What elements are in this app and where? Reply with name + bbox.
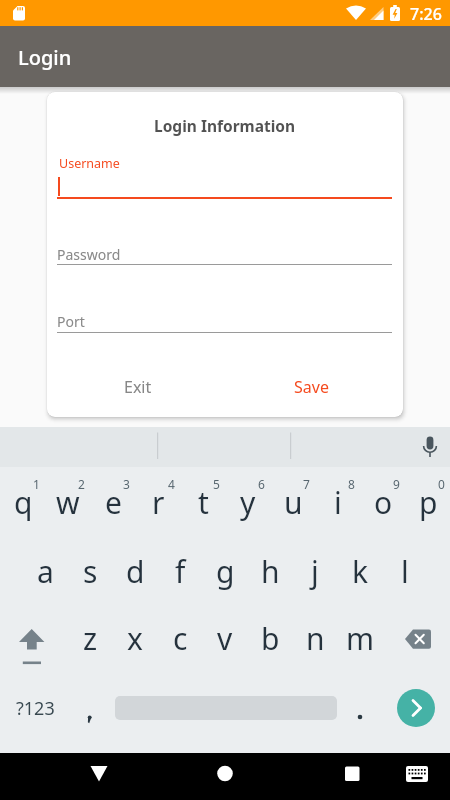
button[interactable]: g bbox=[203, 546, 247, 596]
staticText: 0 bbox=[438, 476, 445, 492]
staticText: v bbox=[217, 618, 233, 659]
button[interactable]: Exit bbox=[93, 362, 183, 412]
staticText: 5 bbox=[213, 476, 220, 492]
staticText: c bbox=[173, 618, 188, 659]
button[interactable]: w bbox=[46, 477, 90, 527]
staticText: 2 bbox=[78, 476, 85, 492]
button[interactable]: z bbox=[68, 613, 112, 663]
staticText: z bbox=[83, 618, 98, 659]
staticText: o bbox=[374, 482, 393, 523]
button[interactable]: u bbox=[271, 477, 315, 527]
button[interactable]: j bbox=[293, 546, 337, 596]
staticText: q bbox=[14, 482, 33, 523]
button[interactable]: a bbox=[23, 546, 67, 596]
button[interactable]: s bbox=[68, 546, 112, 596]
button[interactable]: p bbox=[406, 477, 450, 527]
button[interactable]: Save bbox=[266, 362, 356, 412]
staticText: Login Information bbox=[154, 115, 296, 136]
staticText: Save bbox=[294, 376, 329, 398]
button[interactable] bbox=[332, 753, 372, 800]
button[interactable]: o bbox=[361, 477, 405, 527]
button[interactable] bbox=[400, 753, 440, 800]
staticText: 3 bbox=[123, 476, 130, 492]
staticText: d bbox=[126, 551, 145, 592]
button[interactable]: h bbox=[248, 546, 292, 596]
staticText: Exit bbox=[124, 376, 152, 398]
staticText: r bbox=[152, 482, 165, 523]
staticText: s bbox=[83, 551, 98, 592]
staticText: 1 bbox=[33, 476, 40, 492]
button[interactable]: f bbox=[158, 546, 202, 596]
button[interactable]: t bbox=[181, 477, 225, 527]
staticText: j bbox=[311, 551, 319, 592]
staticText: p bbox=[419, 482, 438, 523]
staticText: 8 bbox=[348, 476, 355, 492]
button[interactable]: k bbox=[338, 546, 382, 596]
staticText: m bbox=[346, 618, 375, 659]
button[interactable]: y bbox=[226, 477, 270, 527]
staticText: 7:26 bbox=[410, 3, 442, 25]
staticText: h bbox=[261, 551, 280, 592]
staticText: n bbox=[306, 618, 325, 659]
staticText: y bbox=[240, 482, 256, 523]
staticText: 7 bbox=[303, 476, 310, 492]
staticText: Port bbox=[57, 312, 85, 331]
button[interactable]: r bbox=[136, 477, 180, 527]
button[interactable]: e bbox=[91, 477, 135, 527]
button[interactable] bbox=[79, 753, 119, 800]
button[interactable]: n bbox=[293, 613, 337, 663]
staticText: u bbox=[284, 482, 303, 523]
button[interactable] bbox=[340, 695, 380, 735]
staticText: x bbox=[127, 618, 143, 659]
staticText: Password bbox=[57, 245, 121, 264]
button[interactable] bbox=[10, 615, 60, 670]
staticText: a bbox=[37, 551, 54, 592]
button[interactable] bbox=[205, 753, 245, 800]
staticText: Login bbox=[18, 44, 72, 71]
staticText: f bbox=[175, 551, 186, 592]
staticText: g bbox=[216, 551, 235, 592]
staticText: 4 bbox=[168, 476, 175, 492]
button[interactable]: i bbox=[316, 477, 360, 527]
button[interactable]: b bbox=[248, 613, 292, 663]
staticText: 9 bbox=[393, 476, 400, 492]
staticText: 6 bbox=[258, 476, 265, 492]
staticText: l bbox=[401, 551, 409, 592]
button[interactable]: l bbox=[383, 546, 427, 596]
button[interactable]: v bbox=[203, 613, 247, 663]
button[interactable]: d bbox=[113, 546, 157, 596]
staticText: i bbox=[334, 482, 342, 523]
staticText: w bbox=[56, 482, 80, 523]
button[interactable]: x bbox=[113, 613, 157, 663]
button[interactable] bbox=[395, 620, 445, 665]
staticText: k bbox=[352, 551, 369, 592]
button[interactable]: c bbox=[158, 613, 202, 663]
button[interactable]: q bbox=[1, 477, 45, 527]
staticText: ?123 bbox=[16, 696, 55, 721]
button[interactable] bbox=[397, 689, 435, 727]
staticText: b bbox=[261, 618, 280, 659]
button[interactable]: ?123 bbox=[0, 683, 70, 733]
button[interactable] bbox=[70, 695, 110, 735]
staticText: t bbox=[198, 482, 209, 523]
staticText: e bbox=[105, 482, 122, 523]
staticText: Username bbox=[59, 155, 120, 172]
button[interactable]: m bbox=[338, 613, 382, 663]
